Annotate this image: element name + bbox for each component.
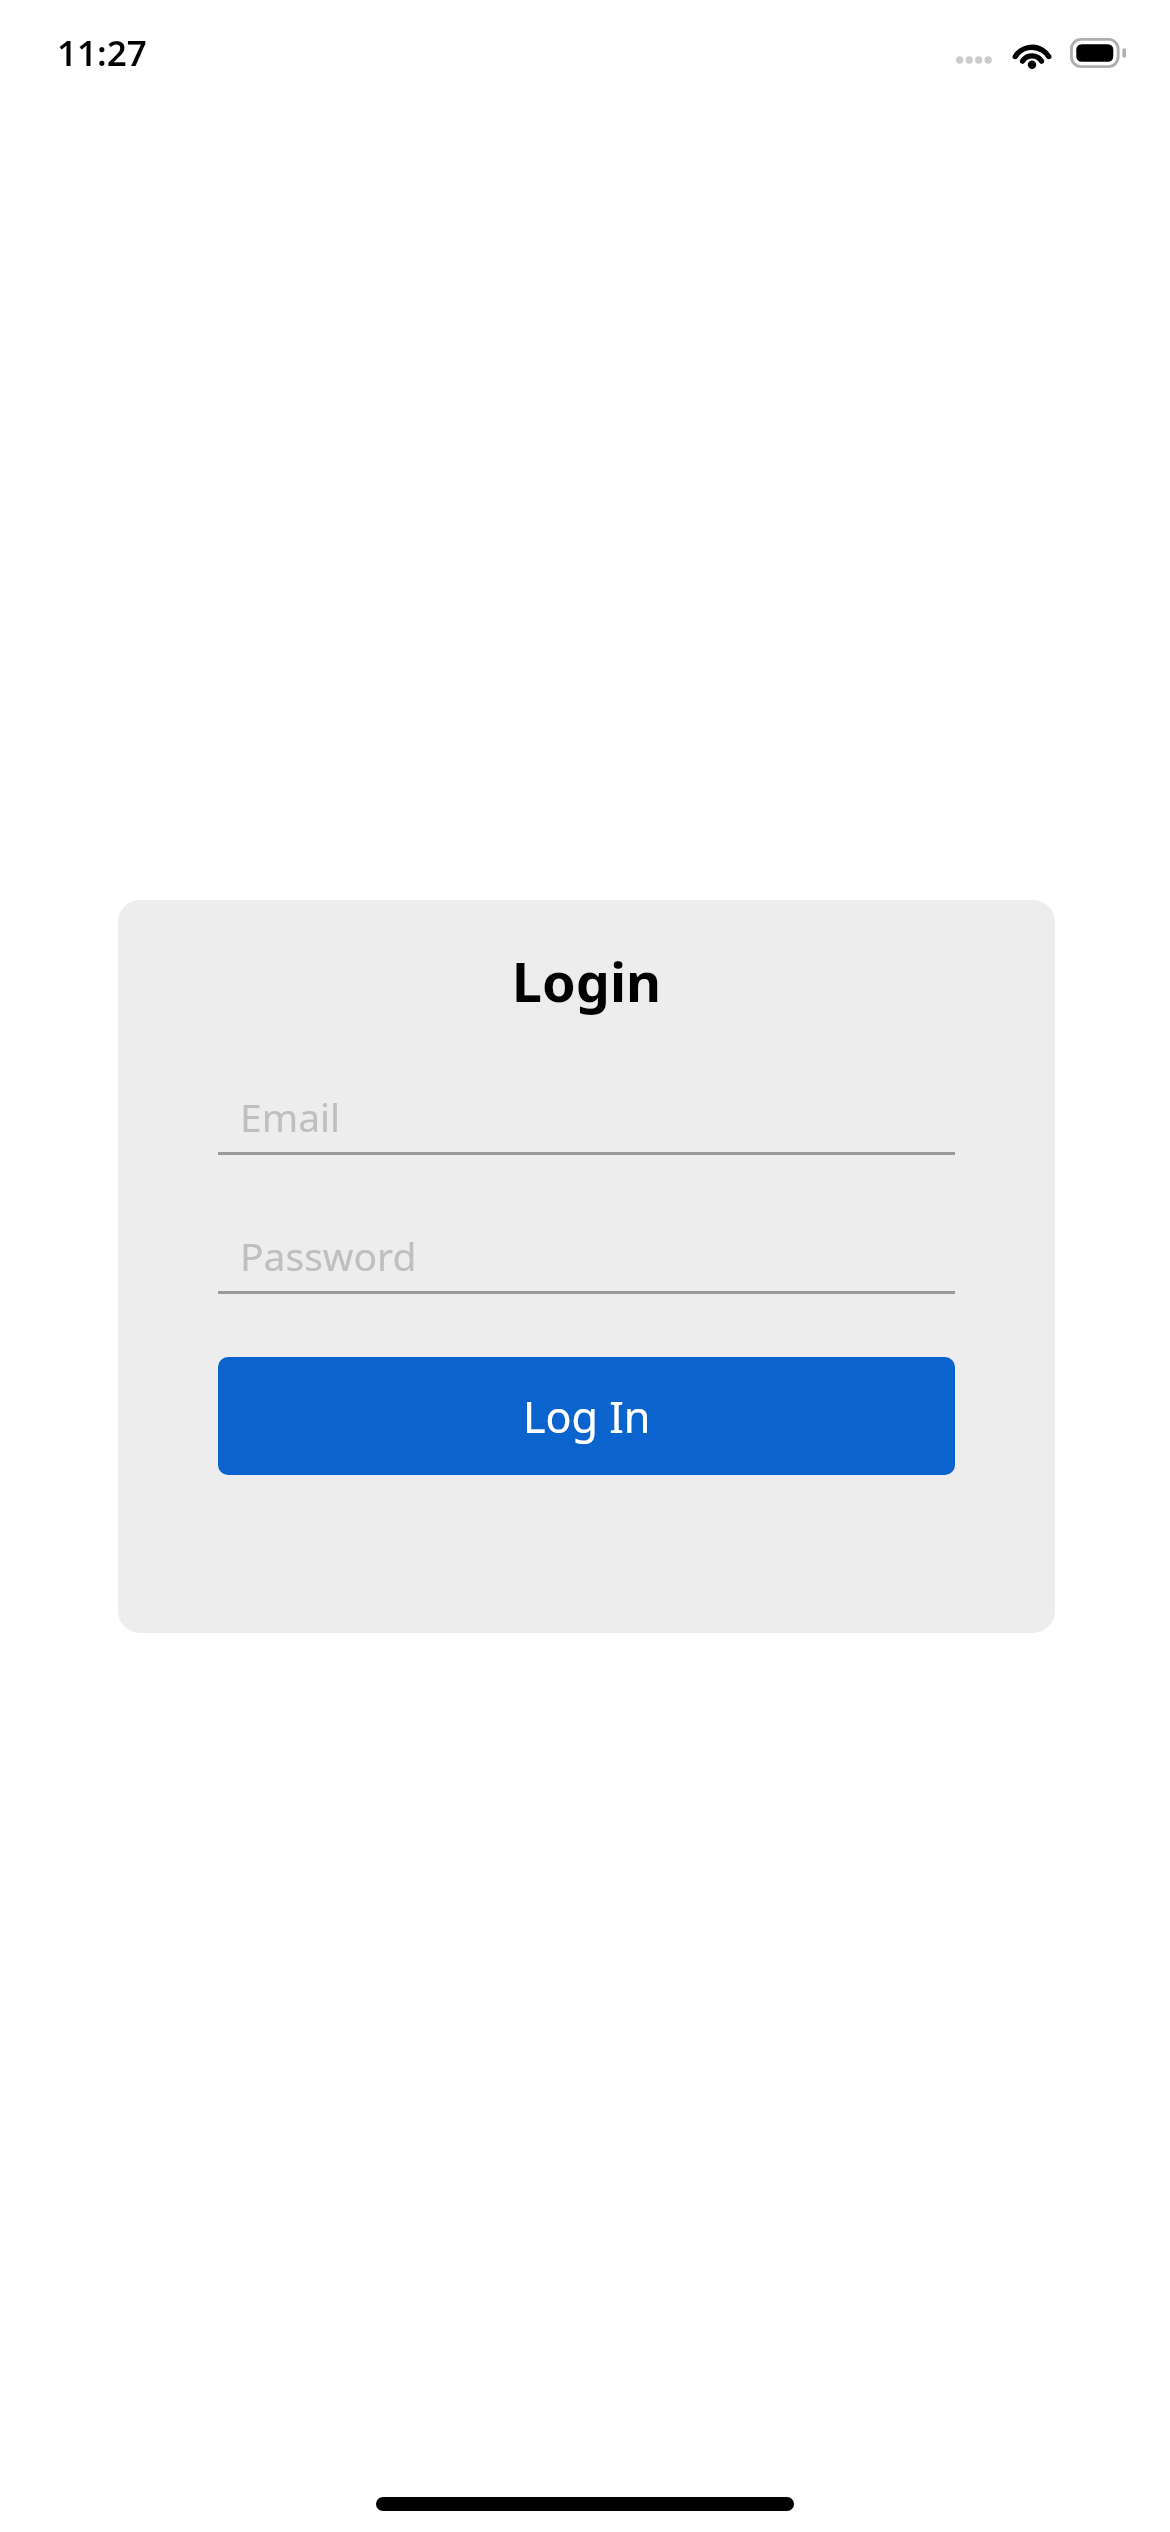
staticText: Login <box>118 944 1055 1018</box>
staticText: Password <box>240 1229 417 1282</box>
button[interactable]: Password <box>218 1219 955 1294</box>
other: Battery <box>1070 38 1126 68</box>
button[interactable]: Email <box>218 1080 955 1155</box>
other: Cellular signal <box>956 37 994 69</box>
button[interactable]: Log In <box>218 1357 955 1475</box>
other: Wi-Fi <box>1010 37 1054 69</box>
staticText: 11:27 <box>57 29 147 77</box>
staticText: Email <box>240 1090 341 1143</box>
staticText: Log In <box>523 1387 651 1446</box>
